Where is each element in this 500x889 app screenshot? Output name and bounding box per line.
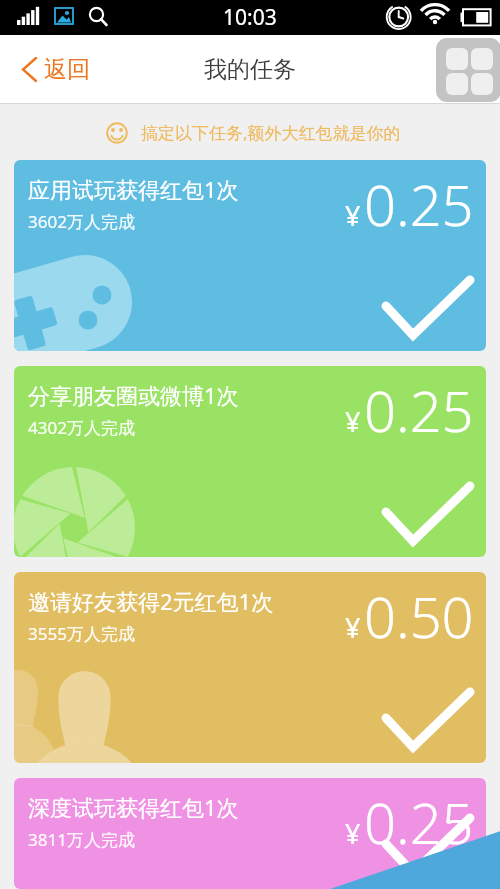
staticText: 10:03 bbox=[223, 3, 277, 32]
staticText: 4302万人完成 bbox=[28, 416, 135, 439]
staticText: 返回 bbox=[44, 55, 90, 84]
staticText: 深度试玩获得红包1次 bbox=[28, 792, 239, 822]
staticText: 0.25 bbox=[364, 784, 474, 860]
button[interactable]: 应用试玩获得红包1次 bbox=[14, 160, 486, 351]
staticText: 0.25 bbox=[364, 166, 474, 242]
staticText: 邀请好友获得2元红包1次 bbox=[28, 586, 274, 616]
staticText: ¥ bbox=[345, 403, 361, 440]
button[interactable]: 深度试玩获得红包1次 bbox=[14, 778, 486, 889]
staticText: ¥ bbox=[345, 609, 361, 646]
staticText: 0.50 bbox=[364, 578, 474, 654]
staticText: 应用试玩获得红包1次 bbox=[28, 174, 239, 204]
staticText: 3602万人完成 bbox=[28, 210, 135, 233]
staticText: ¥ bbox=[345, 815, 361, 852]
staticText: 3811万人完成 bbox=[28, 828, 135, 851]
staticText: 我的任务 bbox=[204, 55, 296, 84]
button[interactable]: 邀请好友获得2元红包1次 bbox=[14, 572, 486, 763]
button[interactable]: 返回 bbox=[0, 45, 102, 94]
button[interactable]: 分享朋友圈或微博1次 bbox=[14, 366, 486, 557]
staticText: 0.25 bbox=[364, 372, 474, 448]
staticText: ¥ bbox=[345, 197, 361, 234]
staticText: 分享朋友圈或微博1次 bbox=[28, 380, 239, 410]
staticText: 搞定以下任务,额外大红包就是你的 bbox=[141, 121, 401, 144]
button[interactable]: Apps grid bbox=[436, 38, 500, 102]
staticText: 3555万人完成 bbox=[28, 622, 135, 645]
